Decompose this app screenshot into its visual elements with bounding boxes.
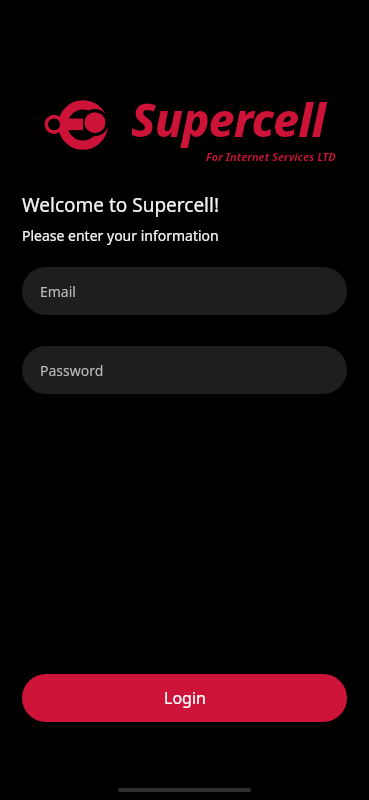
- button[interactable]: Password: [22, 346, 347, 394]
- button[interactable]: Email: [22, 267, 347, 315]
- staticText: Please enter your information: [22, 226, 219, 245]
- button[interactable]: Login: [22, 674, 347, 722]
- staticText: Password: [40, 361, 104, 380]
- staticText: Welcome to Supercell!: [22, 192, 220, 218]
- staticText: Email: [40, 282, 76, 301]
- staticText: Supercell: [131, 88, 325, 151]
- staticText: Login: [164, 687, 206, 709]
- staticText: For Internet Services LTD: [206, 149, 336, 164]
